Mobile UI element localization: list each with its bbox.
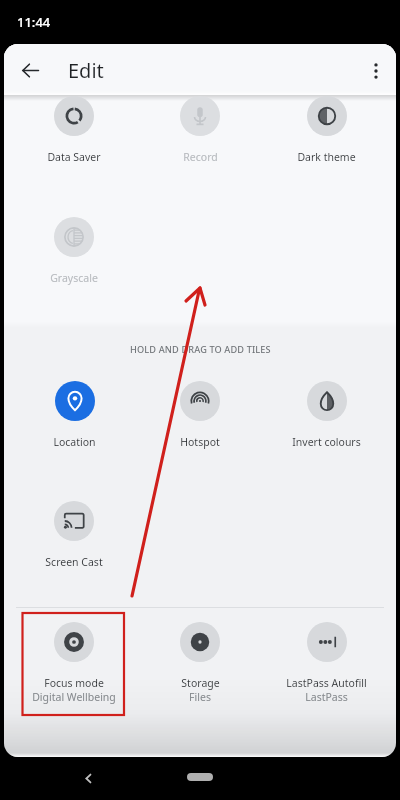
staticText: Files xyxy=(189,690,211,704)
staticText: Edit xyxy=(68,57,104,84)
staticText: Hotspot xyxy=(180,435,220,449)
button[interactable]: Storage xyxy=(144,614,256,706)
button[interactable]: Grayscale xyxy=(18,209,130,289)
staticText: Dark theme xyxy=(297,150,356,164)
staticText: 11:44 xyxy=(17,13,51,31)
button[interactable]: Home xyxy=(187,773,213,781)
button[interactable]: More options xyxy=(361,56,391,86)
staticText: Screen Cast xyxy=(45,555,103,569)
staticText: Focus mode xyxy=(44,676,104,690)
staticText: Invert colours xyxy=(292,435,361,449)
button[interactable]: Back xyxy=(12,52,48,88)
button[interactable]: Dark theme xyxy=(270,88,382,168)
staticText: LastPass Autofill xyxy=(286,676,367,690)
staticText: HOLD AND DRAG TO ADD TILES xyxy=(130,343,271,356)
button[interactable]: Data Saver xyxy=(18,88,130,168)
button[interactable]: Invert colours xyxy=(270,373,382,453)
button[interactable]: Record xyxy=(144,88,256,168)
button[interactable]: Back xyxy=(74,764,102,792)
staticText: Digital Wellbeing xyxy=(32,690,116,704)
button[interactable]: Focus mode xyxy=(18,614,130,706)
staticText: LastPass xyxy=(305,690,348,704)
staticText: Grayscale xyxy=(50,271,98,285)
button[interactable]: Screen Cast xyxy=(18,493,130,573)
staticText: Data Saver xyxy=(47,150,101,164)
button[interactable]: Hotspot xyxy=(144,373,256,453)
staticText: Location xyxy=(53,435,96,449)
staticText: Storage xyxy=(181,676,220,690)
button[interactable]: LastPass Autofill xyxy=(270,614,382,706)
button[interactable]: Location xyxy=(18,373,130,453)
staticText: Record xyxy=(183,150,218,164)
